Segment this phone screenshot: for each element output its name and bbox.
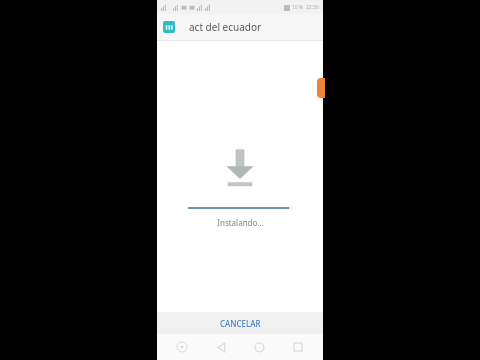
button[interactable]: Hide navigation bar	[168, 337, 196, 357]
button[interactable]: Back	[207, 337, 235, 357]
button[interactable]: Recent apps	[284, 337, 312, 357]
button[interactable]: CANCELAR	[157, 312, 323, 334]
staticText: CANCELAR	[220, 318, 261, 329]
button[interactable]: Home	[245, 337, 273, 357]
staticText: Instalando...	[217, 217, 264, 228]
staticText: 22:36	[306, 4, 319, 11]
staticText: act del ecuador	[189, 20, 262, 34]
staticText: 10 %	[292, 4, 304, 11]
